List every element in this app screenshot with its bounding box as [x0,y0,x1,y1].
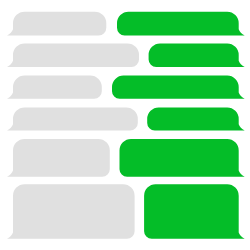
button[interactable]: Message thread [0,0,250,250]
